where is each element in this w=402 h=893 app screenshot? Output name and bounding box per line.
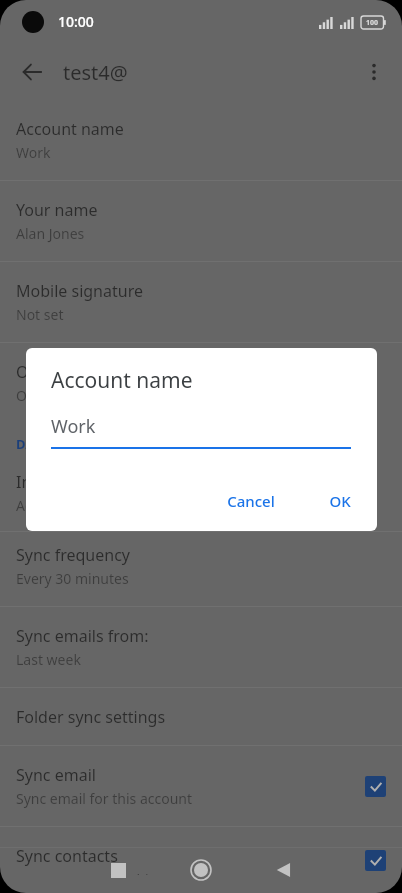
staticText: 10:00 (58, 12, 94, 31)
staticText: Your name (16, 199, 98, 221)
staticText: Account settings (16, 496, 126, 515)
button[interactable]: Sync email (0, 746, 402, 826)
button[interactable]: Folder sync settings (0, 688, 402, 745)
staticText: Account name (51, 366, 193, 395)
button[interactable]: Back (262, 848, 306, 892)
staticText: Mobile signature (16, 280, 143, 302)
staticText: OK (329, 491, 351, 511)
staticText: Last week (16, 650, 81, 669)
staticText: Work (51, 414, 96, 439)
button[interactable]: Out of Office AutoReply (0, 343, 402, 531)
staticText: Sync emails from: (16, 625, 149, 647)
staticText: Alan Jones (16, 224, 85, 243)
button[interactable]: OK (317, 481, 363, 521)
staticText: 100 (366, 18, 379, 28)
button[interactable]: Recents (96, 848, 140, 892)
button[interactable]: More options (352, 50, 396, 94)
staticText: Account name (16, 118, 124, 140)
staticText: Out of Office AutoReply (16, 361, 193, 383)
button[interactable]: Mobile signature (0, 262, 402, 342)
staticText: Sync email for this account (16, 789, 193, 808)
staticText: Folder sync settings (16, 706, 166, 728)
staticText: Cancel (227, 491, 275, 511)
staticText: DATA USAGE (16, 435, 95, 453)
staticText: Every 30 minutes (16, 569, 129, 588)
button[interactable]: Sync contacts (0, 827, 402, 893)
staticText: Sync email (16, 764, 96, 786)
button[interactable]: Cancel (215, 481, 287, 521)
staticText: Sync contacts (16, 845, 118, 867)
staticText: Off (16, 386, 37, 405)
staticText: Work (16, 143, 51, 162)
button[interactable]: Your name (0, 181, 402, 261)
staticText: Sync contacts for this account (16, 870, 212, 875)
staticText: test4@ (63, 59, 128, 86)
button[interactable]: Home (179, 848, 223, 892)
button[interactable]: Back (10, 50, 54, 94)
staticText: Incoming settings (16, 471, 152, 493)
staticText: Sync frequency (16, 544, 130, 566)
button[interactable]: Work (51, 414, 351, 449)
button[interactable]: Account name (0, 100, 402, 180)
button[interactable]: Sync emails from: (0, 607, 402, 687)
button[interactable]: Sync frequency (0, 532, 402, 606)
staticText: Not set (16, 305, 64, 324)
